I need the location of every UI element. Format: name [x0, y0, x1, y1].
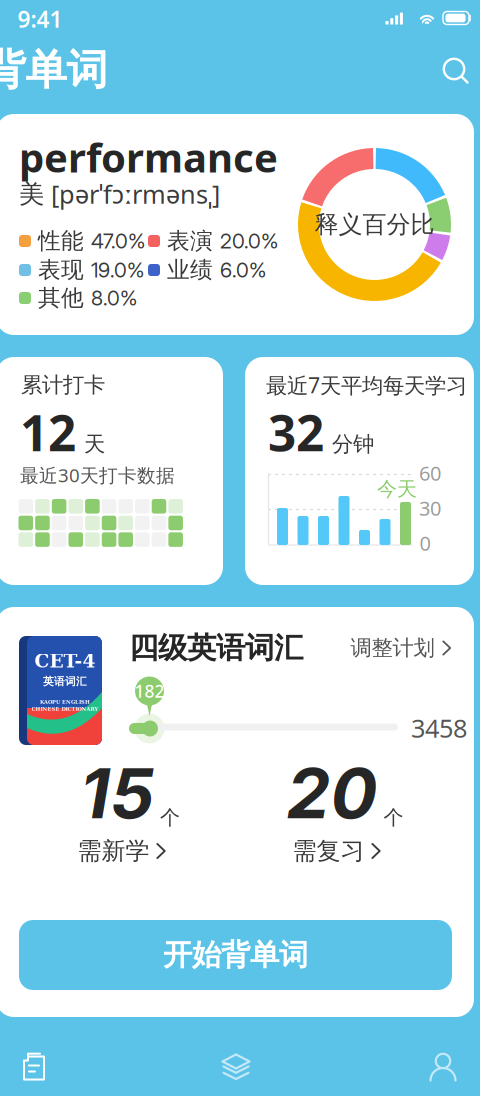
- staticText: 20.0%: [220, 228, 278, 253]
- staticText: 释义百分比: [314, 210, 434, 239]
- staticText: CHINESE DICTIONARY: [31, 706, 98, 712]
- staticText: 最近30天打卡数据: [20, 463, 175, 487]
- staticText: 天: [84, 431, 105, 457]
- staticText: 9:41: [17, 4, 62, 34]
- staticText: 30: [419, 495, 441, 521]
- staticText: 需新学: [77, 836, 149, 866]
- staticText: 开始背单词: [163, 937, 308, 973]
- staticText: 调整计划: [350, 635, 434, 661]
- staticText: 业绩: [167, 256, 213, 284]
- staticText: 15: [80, 751, 154, 835]
- staticText: 47.0%: [91, 228, 145, 253]
- staticText: 12: [20, 399, 76, 465]
- staticText: 3458: [411, 711, 467, 745]
- staticText: 6.0%: [220, 257, 266, 282]
- button[interactable]: Decks: [207, 1039, 265, 1095]
- staticText: 性能: [38, 227, 84, 255]
- staticText: 美: [19, 178, 44, 209]
- staticText: CET-4: [34, 650, 95, 672]
- staticText: 表演: [167, 227, 213, 255]
- staticText: 表现: [38, 256, 84, 284]
- button[interactable]: Word book: [8, 1038, 60, 1095]
- staticText: 个: [160, 805, 180, 830]
- button[interactable]: 20: [265, 763, 425, 873]
- staticText: 0: [419, 530, 430, 556]
- staticText: 背单词: [0, 45, 107, 95]
- button[interactable]: 15: [50, 763, 210, 873]
- staticText: 最近7天平均每天学习: [266, 371, 467, 399]
- staticText: 分钟: [332, 431, 374, 457]
- button[interactable]: Profile: [415, 1038, 471, 1095]
- staticText: 个: [383, 805, 403, 830]
- staticText: 20: [286, 751, 377, 835]
- staticText: 32: [268, 399, 324, 465]
- staticText: 累计打卡: [21, 372, 105, 398]
- staticText: 8.0%: [91, 285, 137, 310]
- staticText: 182: [134, 679, 164, 702]
- staticText: 英语词汇: [43, 675, 87, 688]
- staticText: 其他: [38, 284, 84, 312]
- staticText: performance: [19, 130, 278, 183]
- staticText: 60: [419, 460, 441, 486]
- staticText: 需复习: [292, 836, 364, 866]
- staticText: 19.0%: [91, 257, 144, 282]
- staticText: KAOPU ENGLISH: [40, 699, 90, 705]
- button[interactable]: Search: [431, 46, 479, 94]
- button[interactable]: 开始背单词: [19, 920, 452, 990]
- staticText: 今天: [377, 477, 417, 501]
- button[interactable]: 调整计划: [344, 629, 458, 667]
- staticText: [pərˈfɔːrmənsˌ]: [51, 177, 220, 211]
- staticText: 四级英语词汇: [129, 630, 303, 666]
